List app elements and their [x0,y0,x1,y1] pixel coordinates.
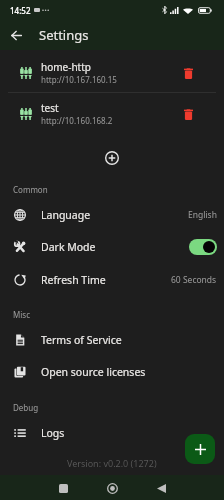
button[interactable]: Logs [0,417,224,449]
button[interactable]: home-http [0,53,224,92]
staticText: Language [41,208,91,222]
staticText: 60 Seconds [171,274,217,286]
button[interactable]: Back [5,24,27,46]
button[interactable]: Terms of Service [0,324,224,356]
staticText: test [41,101,59,115]
button[interactable]: Language [0,199,224,231]
staticText: http://10.167.160.15 [41,74,117,85]
staticText: Dark Mode [41,240,96,254]
button[interactable]: Back [151,478,171,498]
button[interactable]: Delete [178,63,198,83]
button[interactable]: Dark Mode [189,239,217,255]
staticText: Refresh Time [41,273,106,287]
staticText: Open source licenses [41,365,146,379]
staticText: 14:52 [10,5,31,16]
button[interactable]: Dark Mode [0,231,224,263]
button[interactable]: Recents [53,478,73,498]
button[interactable]: Delete [178,104,198,124]
staticText: Version: v0.2.0 (1272) [67,457,157,469]
staticText: English [188,209,217,221]
staticText: Settings [39,26,89,44]
button[interactable]: Home [102,478,122,498]
staticText: Common [13,184,48,195]
button[interactable]: Add server [101,147,123,169]
staticText: Terms of Service [41,333,122,347]
button[interactable]: test [0,94,224,133]
button[interactable]: Refresh Time [0,264,224,296]
staticText: Logs [41,426,65,440]
staticText: http://10.160.168.2 [41,115,113,126]
staticText: Misc [13,309,30,320]
button[interactable]: Add [185,434,215,464]
button[interactable]: Open source licenses [0,356,224,388]
staticText: home-http [41,60,91,74]
staticText: Debug [13,402,39,413]
